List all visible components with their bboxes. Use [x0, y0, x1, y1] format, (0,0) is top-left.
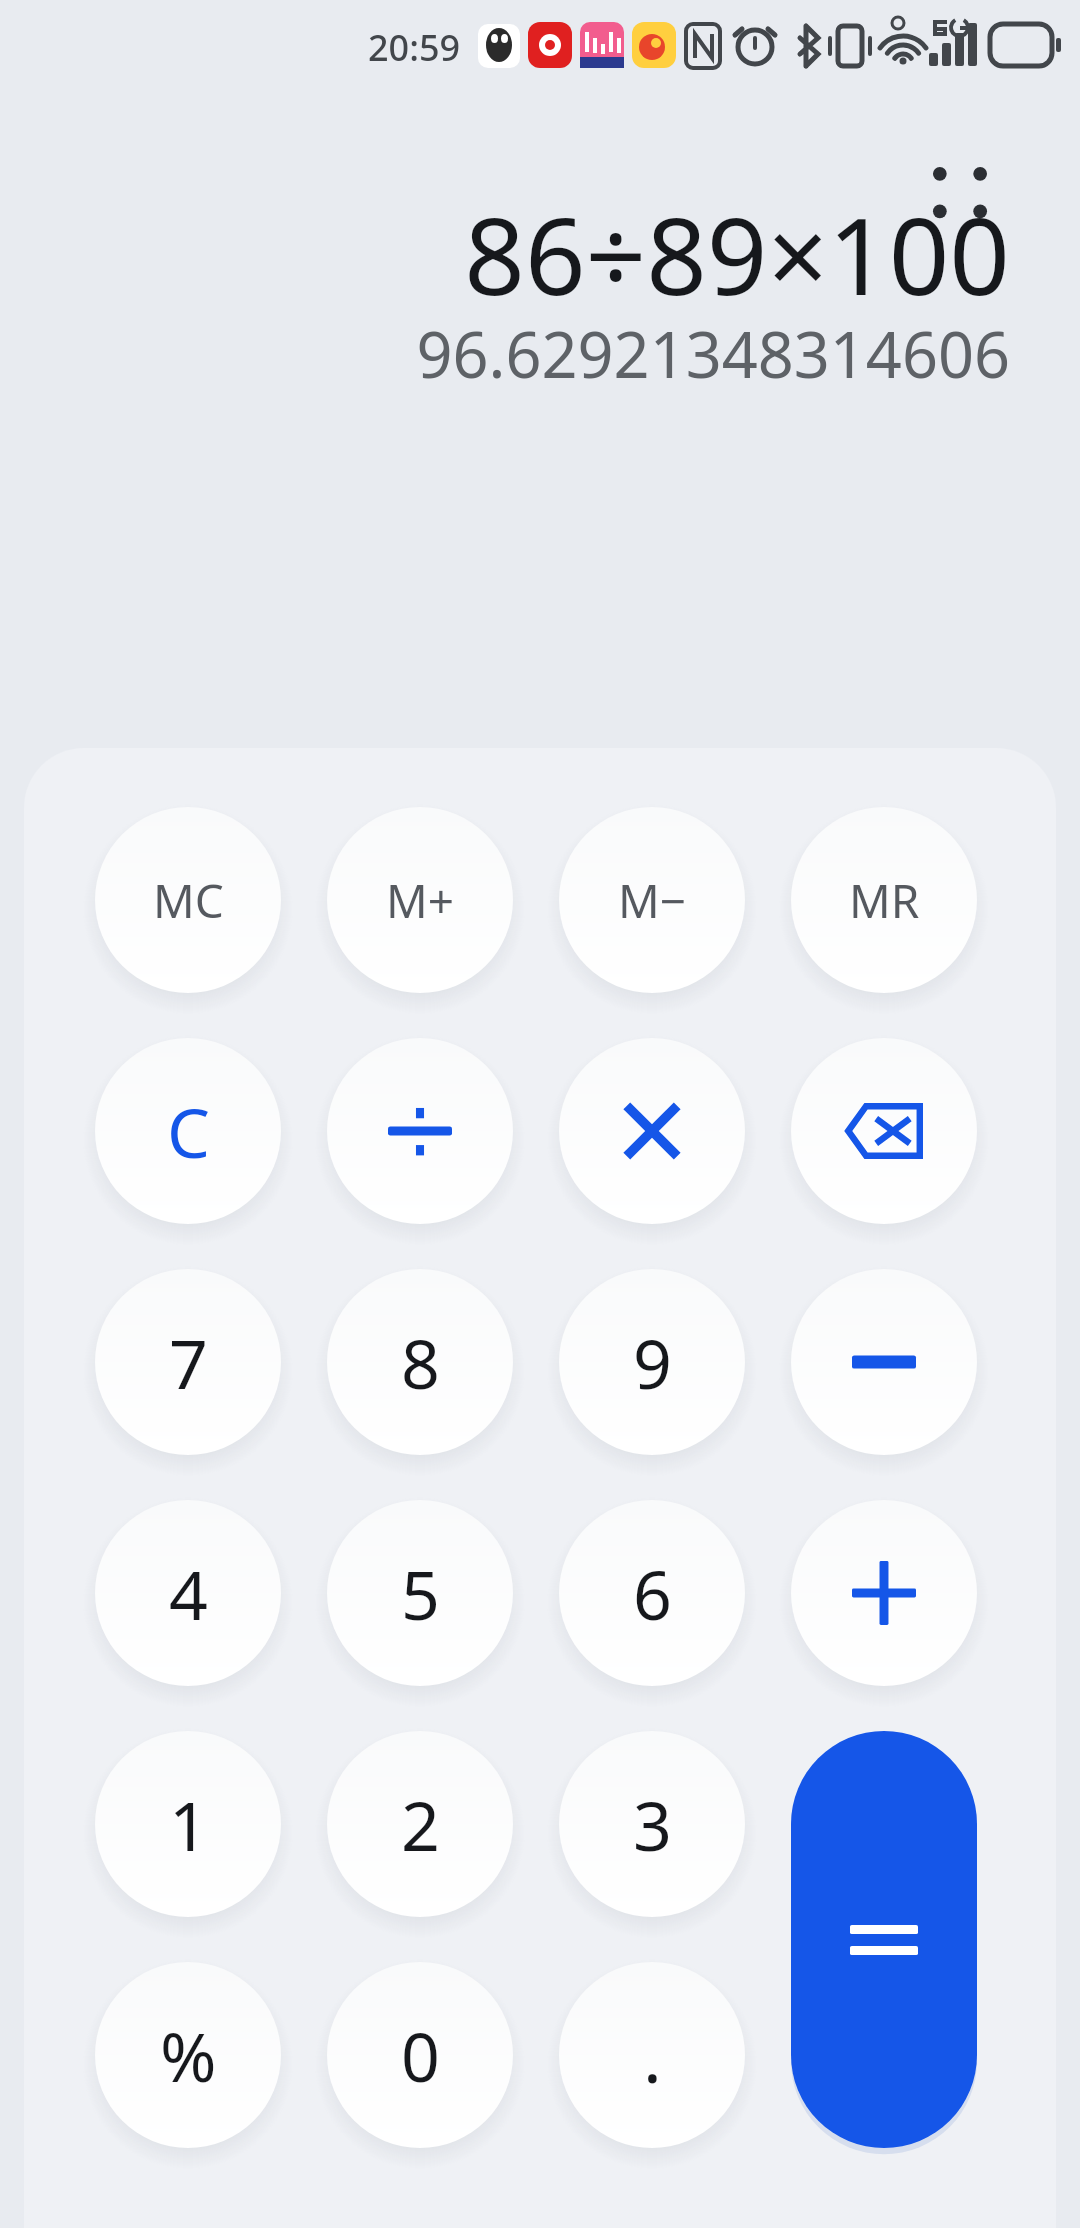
button[interactable]: Backspace — [791, 1038, 977, 1224]
button[interactable]: 0 — [327, 1962, 513, 2148]
button[interactable]: 9 — [559, 1269, 745, 1455]
staticText: 1 — [169, 1778, 208, 1871]
staticText: 86÷89×100 — [464, 182, 1010, 312]
button[interactable]: 5 — [327, 1500, 513, 1686]
button[interactable]: 2 — [327, 1731, 513, 1917]
staticText: % — [160, 2009, 217, 2102]
staticText: 9 — [633, 1316, 672, 1409]
staticText: . — [643, 2008, 662, 2103]
button[interactable]: M+ — [327, 807, 513, 993]
button[interactable]: C — [95, 1038, 281, 1224]
button[interactable]: MC — [95, 807, 281, 993]
button[interactable]: 6 — [559, 1500, 745, 1686]
button[interactable]: 7 — [95, 1269, 281, 1455]
button[interactable]: 4 — [95, 1500, 281, 1686]
button[interactable]: 8 — [327, 1269, 513, 1455]
staticText: 7 — [169, 1316, 208, 1409]
staticText: MR — [849, 869, 920, 932]
button[interactable] — [559, 1038, 745, 1224]
button[interactable]: More options — [918, 152, 1002, 230]
button[interactable]: Equals — [791, 1731, 977, 2148]
button[interactable]: MR — [791, 807, 977, 993]
button[interactable] — [791, 1500, 977, 1686]
staticText: M+ — [386, 869, 455, 932]
staticText: 96.62921348314606 — [416, 311, 1010, 397]
staticText: 3 — [633, 1778, 672, 1871]
button[interactable]: M− — [559, 807, 745, 993]
staticText: 4 — [169, 1547, 208, 1640]
button[interactable]: 3 — [559, 1731, 745, 1917]
staticText: MC — [153, 869, 224, 932]
button[interactable]: % — [95, 1962, 281, 2148]
staticText: 6 — [633, 1547, 672, 1640]
button[interactable]: 1 — [95, 1731, 281, 1917]
staticText: 2 — [401, 1778, 440, 1871]
button[interactable] — [791, 1269, 977, 1455]
staticText: M− — [618, 869, 687, 932]
staticText: 0 — [401, 2009, 440, 2102]
staticText: 5 — [401, 1547, 440, 1640]
button[interactable] — [327, 1038, 513, 1224]
staticText: 8 — [401, 1316, 440, 1409]
staticText: 20:59 — [368, 23, 461, 72]
staticText: C — [167, 1085, 210, 1178]
button[interactable]: . — [559, 1962, 745, 2148]
